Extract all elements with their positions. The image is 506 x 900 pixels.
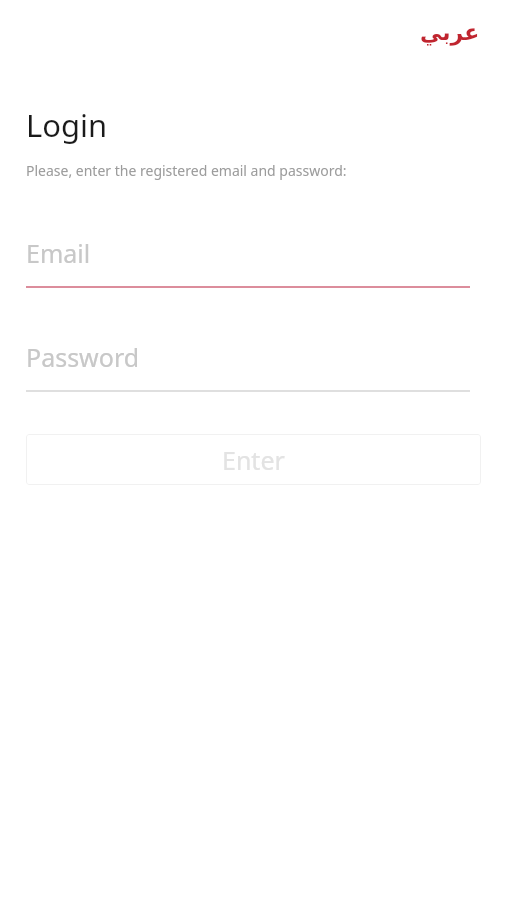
button[interactable]: Switch language to Arabic [410,16,490,50]
staticText: عربي [420,20,480,46]
staticText: Email [26,236,91,270]
button[interactable]: Email [26,232,470,288]
button[interactable]: Enter [26,434,481,485]
staticText: Login [26,104,108,146]
staticText: Enter [222,443,285,477]
staticText: Please, enter the registered email and p… [26,161,347,180]
staticText: Password [26,340,140,374]
button[interactable]: Password [26,336,470,392]
